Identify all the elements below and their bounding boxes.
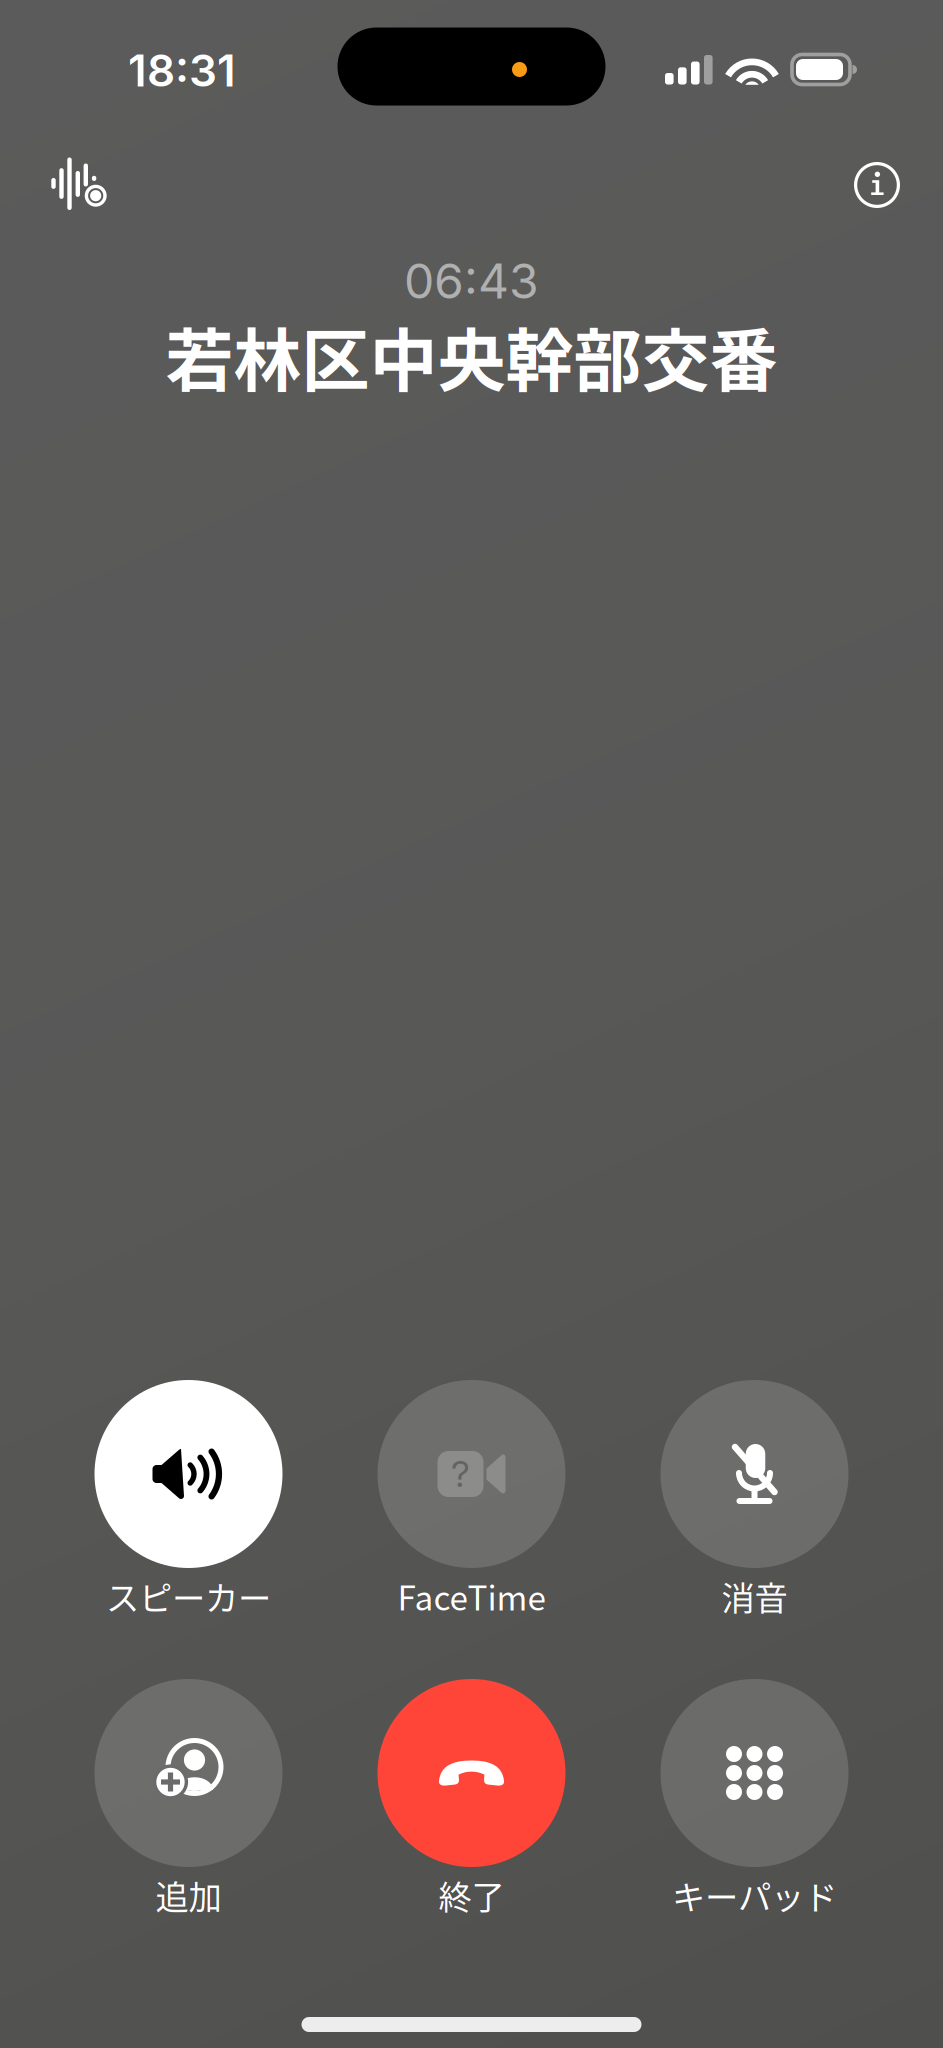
staticText: キーパッド xyxy=(672,1871,837,1919)
staticText: スピーカー xyxy=(106,1572,271,1620)
button[interactable]: 終了 xyxy=(330,1679,613,1914)
staticText: 06:43 xyxy=(404,252,539,310)
staticText: 若林区中央幹部交番 xyxy=(165,307,777,405)
staticText: FaceTime xyxy=(397,1572,545,1620)
staticText: 追加 xyxy=(155,1871,221,1919)
button[interactable]: キーパッド xyxy=(613,1679,896,1914)
button[interactable]: 消音 xyxy=(613,1380,896,1615)
button[interactable]: Audio route xyxy=(28,137,124,233)
button[interactable]: Call details xyxy=(829,137,925,233)
button[interactable]: ? xyxy=(330,1380,613,1615)
button[interactable]: スピーカー xyxy=(47,1380,330,1615)
staticText: ? xyxy=(451,1452,470,1496)
staticText: 消音 xyxy=(721,1572,787,1620)
button[interactable]: 追加 xyxy=(47,1679,330,1914)
staticText: 終了 xyxy=(438,1871,504,1919)
staticText: 18:31 xyxy=(128,44,236,97)
